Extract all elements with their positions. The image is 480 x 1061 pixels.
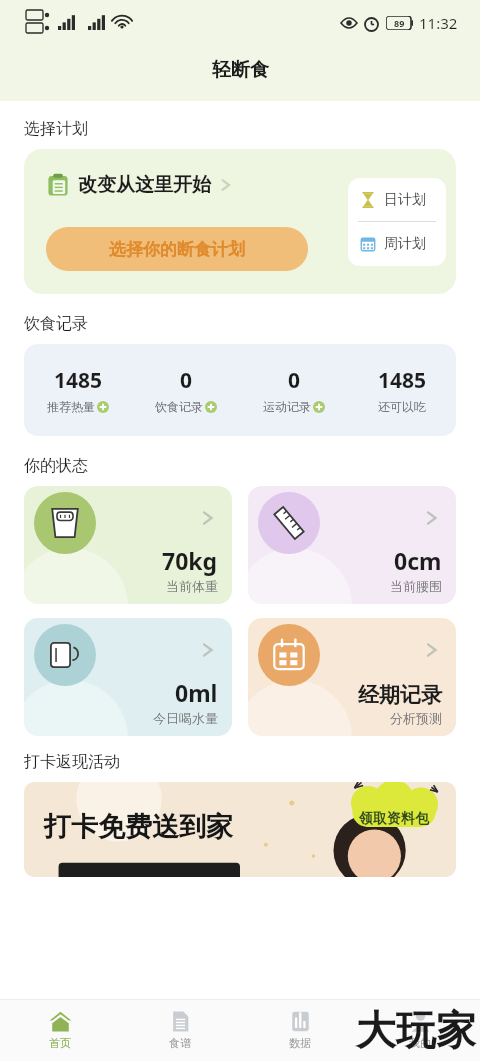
staticText: 轻断食 [212, 58, 269, 82]
staticText: 分析预测 [390, 710, 442, 726]
button[interactable]: 周计划 [360, 222, 446, 266]
staticText: 我的 [409, 1036, 431, 1050]
button[interactable]: 0 [240, 344, 348, 436]
staticText: 0cm [394, 545, 442, 576]
staticText: 食谱 [169, 1036, 191, 1050]
button[interactable]: 打卡免费送到家 [24, 782, 456, 877]
staticText: 当前体重 [166, 578, 218, 594]
staticText: 当前腰围 [390, 578, 442, 594]
staticText: 数据 [289, 1036, 311, 1050]
staticText: 首页 [49, 1036, 71, 1050]
staticText: 改变从这里开始 [78, 173, 211, 197]
staticText: 70kg [162, 545, 218, 576]
staticText: 你的状态 [24, 456, 88, 476]
button[interactable]: 我的 [360, 999, 480, 1061]
staticText: 饮食记录 [155, 399, 203, 414]
staticText: 选择计划 [24, 119, 88, 139]
staticText: 经期记录 [358, 682, 442, 708]
button[interactable]: 改变从这里开始 [24, 149, 456, 294]
staticText: 89 [394, 17, 405, 29]
button[interactable]: 1485 [24, 344, 132, 436]
staticText: 1485 [378, 366, 427, 395]
button[interactable]: 0ml [24, 618, 232, 736]
button[interactable]: 食谱 [120, 999, 240, 1061]
staticText: 运动记录 [263, 399, 311, 414]
staticText: 0 [180, 366, 193, 395]
button[interactable]: 选择你的断食计划 [46, 227, 308, 271]
staticText: 还可以吃 [378, 399, 426, 414]
button[interactable]: 经期记录 [248, 618, 456, 736]
staticText: 11:32 [419, 13, 458, 33]
staticText: 打卡免费送到家 [44, 810, 233, 844]
button[interactable]: 日计划 [360, 178, 446, 221]
button[interactable]: 1485 [24, 344, 456, 436]
staticText: 日计划 [384, 191, 426, 209]
staticText: 0 [288, 366, 301, 395]
button[interactable]: 70kg [24, 486, 232, 604]
staticText: 周计划 [384, 235, 426, 253]
button[interactable]: 首页 [0, 999, 120, 1061]
button[interactable]: 1485 [348, 344, 456, 436]
button[interactable]: 数据 [240, 999, 360, 1061]
staticText: 推荐热量 [47, 399, 95, 414]
staticText: 饮食记录 [24, 314, 88, 334]
button[interactable]: 0cm [248, 486, 456, 604]
staticText: 0ml [175, 677, 218, 708]
staticText: 领取资料包 [359, 810, 429, 828]
button[interactable]: 0 [132, 344, 240, 436]
staticText: 1485 [54, 366, 103, 395]
staticText: 大玩家 [356, 1005, 476, 1055]
staticText: 选择你的断食计划 [109, 239, 245, 260]
staticText: 今日喝水量 [153, 710, 218, 726]
staticText: 打卡返现活动 [24, 752, 120, 772]
